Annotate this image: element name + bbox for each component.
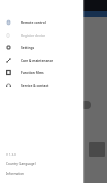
staticText: Settings xyxy=(21,46,35,50)
button[interactable]: Service & contact xyxy=(0,79,83,92)
staticText: Remote control xyxy=(21,21,46,25)
staticText: Country (Language) xyxy=(6,162,36,166)
button[interactable]: Country (Language) xyxy=(6,159,83,169)
staticText: Information xyxy=(6,172,25,176)
button[interactable]: Settings xyxy=(0,41,83,54)
staticText: Care & maintenance xyxy=(21,59,54,63)
staticText: Function films xyxy=(21,71,44,75)
button[interactable]: Information xyxy=(6,169,83,178)
staticText: Register device xyxy=(21,34,46,38)
button[interactable]: Function films xyxy=(0,66,83,79)
button[interactable]: Remote control xyxy=(0,16,83,29)
staticText: V 1.3.0 xyxy=(6,153,16,157)
button[interactable]: Register device xyxy=(0,29,83,42)
staticText: Service & contact xyxy=(21,84,49,88)
button[interactable]: Care & maintenance xyxy=(0,54,83,67)
